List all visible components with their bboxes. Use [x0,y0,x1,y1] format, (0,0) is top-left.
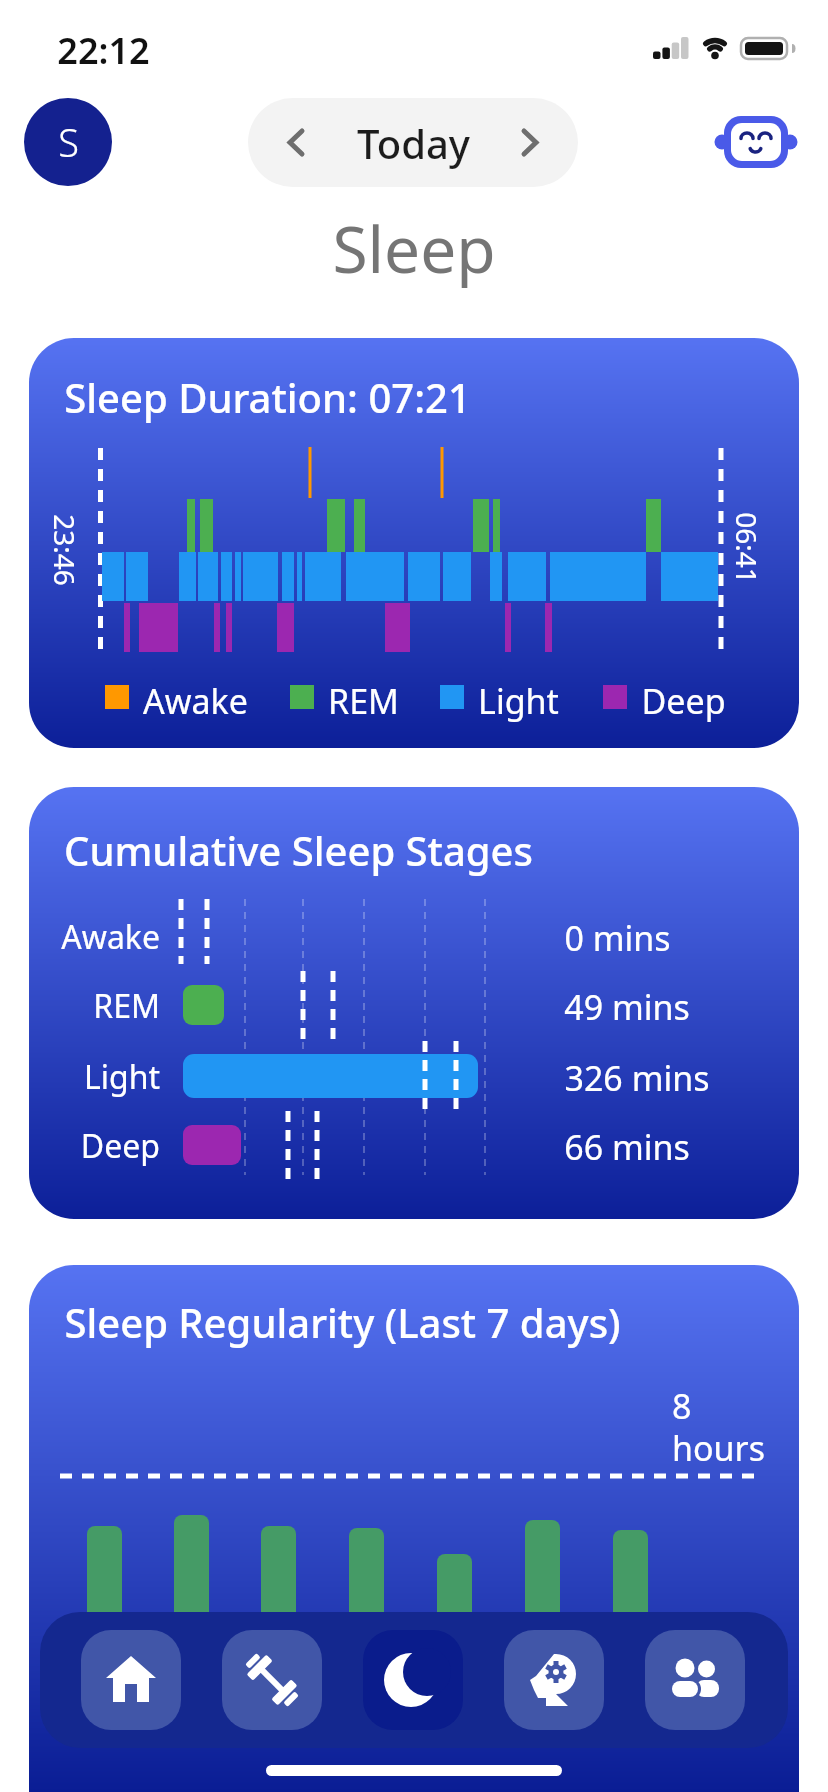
staticText: Deep [80,1124,160,1168]
staticText: Light [83,1055,160,1099]
staticText: 22:12 [57,26,150,75]
staticText: Sleep Regularity (Last 7 days) [64,1295,621,1349]
staticText: Awake [61,915,160,959]
staticText: Today [357,116,470,170]
staticText: Sleep Duration: 07:21 [64,370,471,424]
button[interactable] [363,1630,463,1730]
button[interactable] [81,1630,181,1730]
button[interactable]: Today [248,98,578,187]
staticText: 23:46 [54,514,84,586]
staticText: 66 mins [564,1124,690,1170]
staticText: REM [93,984,160,1028]
button[interactable] [714,110,798,174]
button[interactable] [645,1630,745,1730]
staticText: Cumulative Sleep Stages [64,823,533,877]
staticText: Sleep [332,205,496,289]
staticText: 0 mins [564,915,671,961]
button[interactable] [222,1630,322,1730]
staticText: 326 mins [564,1055,710,1101]
staticText: 49 mins [564,984,690,1030]
staticText: 8 hours [672,1383,765,1471]
staticText: S [58,116,79,168]
staticText: 06:41 [736,512,766,584]
staticText: REM [328,678,399,724]
button[interactable]: S [24,98,112,186]
button[interactable] [504,1630,604,1730]
staticText: Awake [143,678,248,724]
staticText: Deep [641,678,726,724]
staticText: Light [478,678,559,724]
